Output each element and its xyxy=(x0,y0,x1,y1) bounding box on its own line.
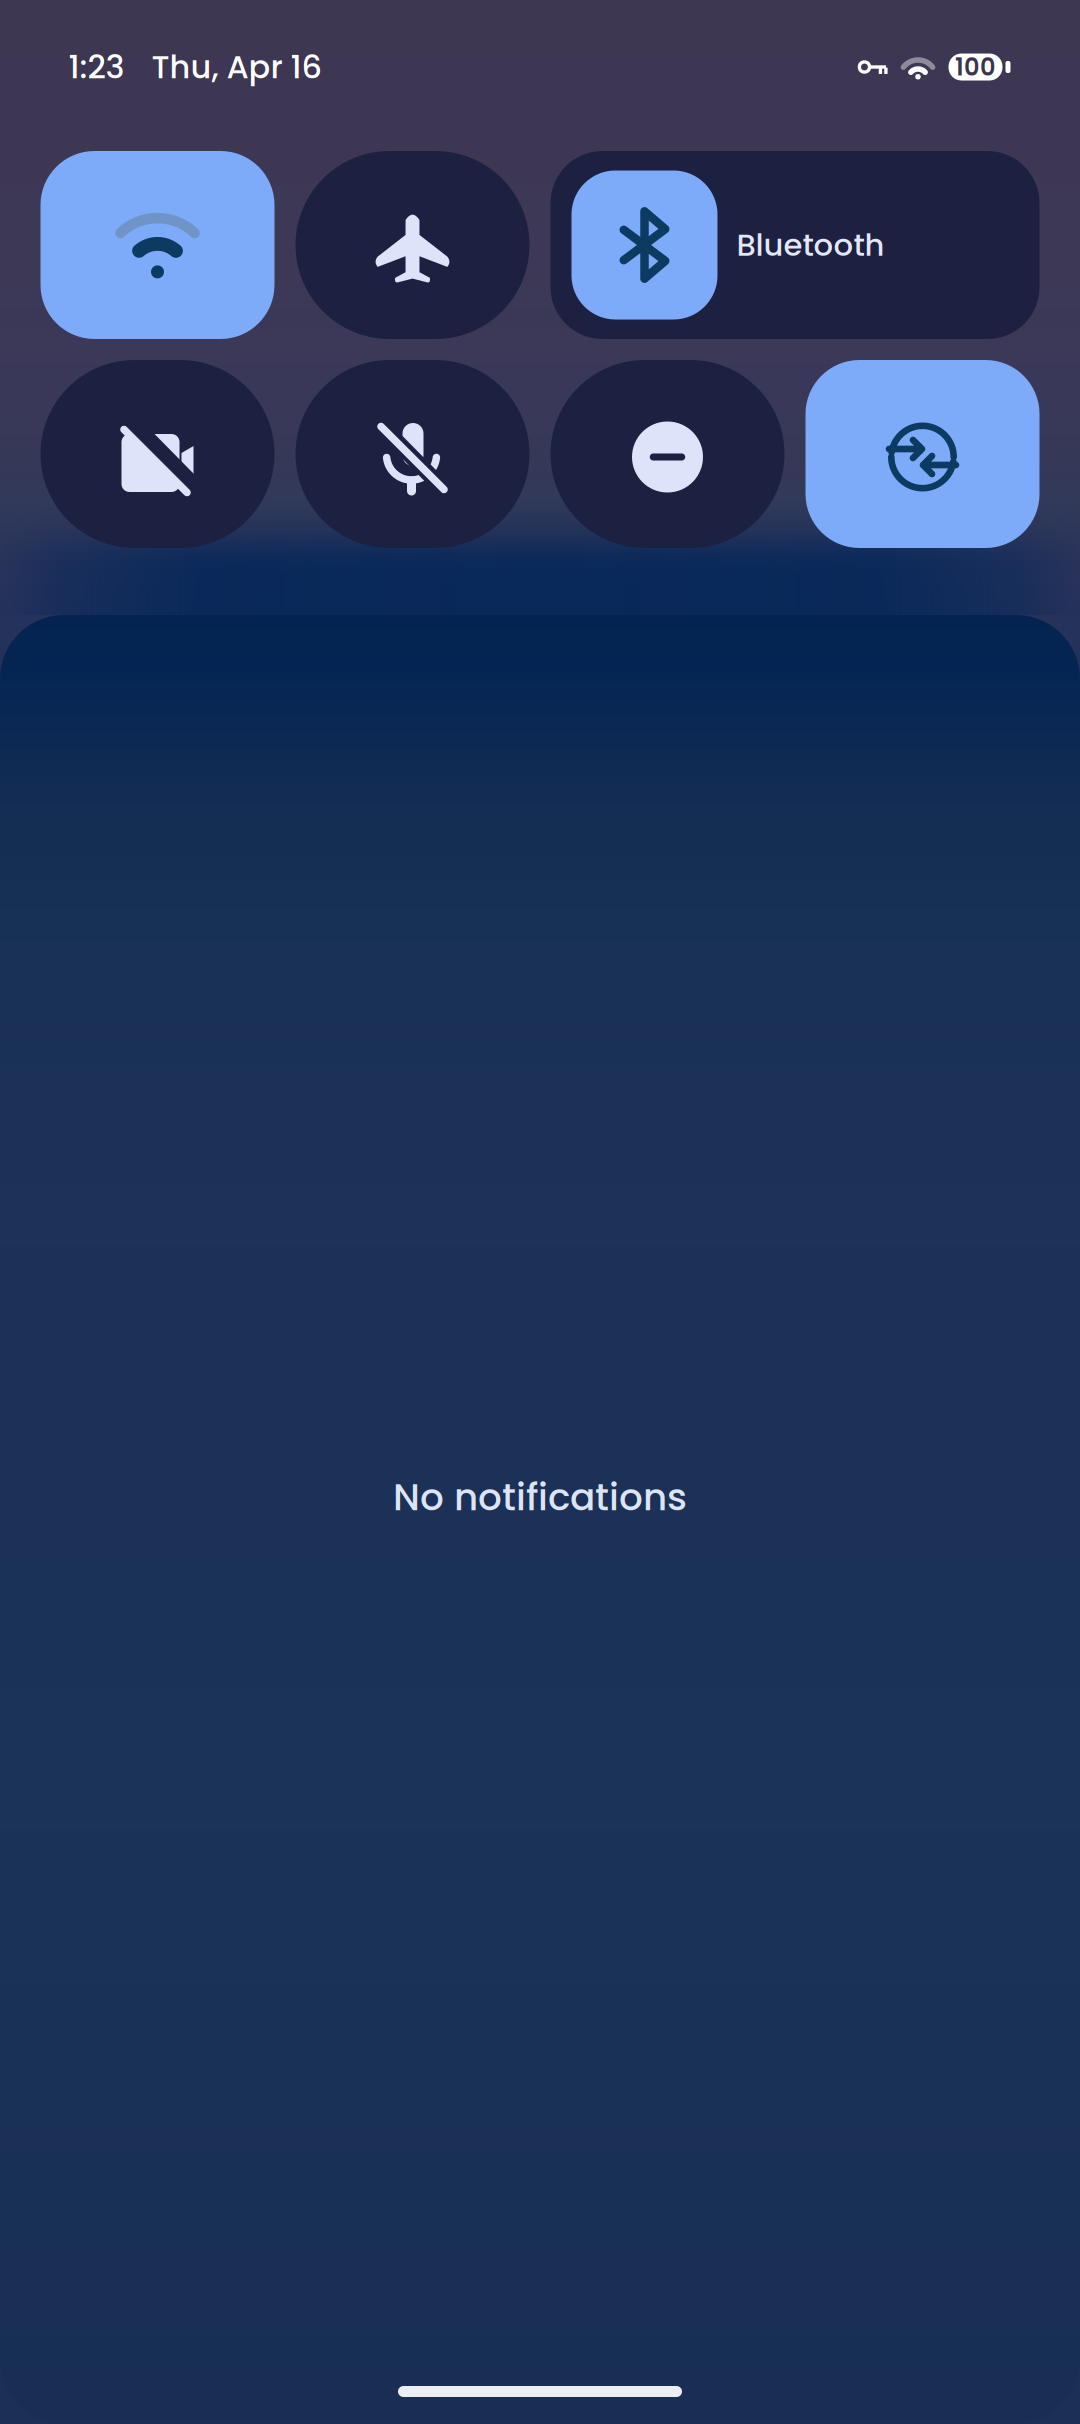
button[interactable]: No notifications xyxy=(393,1471,687,1523)
button[interactable]: Internet xyxy=(40,151,274,339)
button[interactable]: Microphone access xyxy=(295,360,529,548)
button[interactable]: Do Not Disturb xyxy=(550,360,784,548)
staticText: No notifications xyxy=(393,1471,687,1523)
staticText: 1:23 xyxy=(68,45,124,89)
button[interactable]: Bluetooth xyxy=(550,151,1039,339)
staticText: 100 xyxy=(955,50,996,84)
staticText: Bluetooth xyxy=(736,223,884,266)
button[interactable]: Airplane mode xyxy=(295,151,529,339)
button[interactable]: Data Saver xyxy=(805,360,1039,548)
staticText: Thu, Apr 16 xyxy=(151,45,322,89)
button[interactable]: Camera access xyxy=(40,360,274,548)
